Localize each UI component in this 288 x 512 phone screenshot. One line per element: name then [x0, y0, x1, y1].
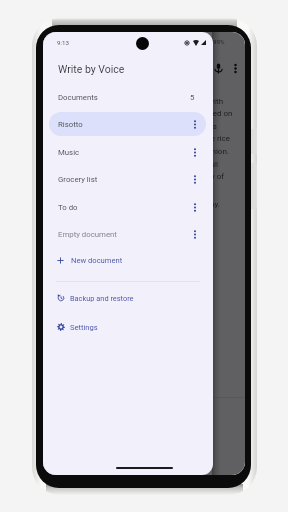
staticText: Start the day with — [161, 97, 224, 106]
button[interactable]: Grocery list — [49, 167, 206, 191]
button[interactable]: Risotto — [49, 112, 206, 136]
button[interactable]: Music — [49, 140, 206, 164]
staticText: 9:13 — [57, 39, 69, 46]
staticText: 99% — [213, 38, 225, 45]
button[interactable]: More options for To do — [188, 197, 201, 217]
staticText: Settings — [70, 323, 98, 332]
button[interactable]: To do — [49, 195, 206, 219]
button[interactable]: Voice input — [212, 62, 225, 75]
staticText: Write by Voice — [58, 63, 125, 75]
staticText: Enjoy. — [199, 200, 220, 209]
staticText: Then add a small — [157, 160, 218, 169]
button[interactable]: More options — [229, 62, 242, 75]
staticText: Risotto — [58, 120, 83, 129]
button[interactable]: More options for Grocery list — [188, 169, 201, 189]
button[interactable]: More options for Music — [188, 142, 201, 162]
button[interactable]: New document — [49, 248, 206, 272]
staticText: Grocery list — [58, 175, 98, 184]
staticText: To do — [58, 203, 78, 212]
staticText: this recipes — [176, 122, 217, 131]
staticText: Documents — [58, 93, 98, 102]
staticText: 5 — [190, 93, 195, 102]
staticText: Chop the onion. — [173, 147, 229, 156]
button[interactable]: Settings — [49, 316, 206, 338]
staticText: quantity of — [186, 172, 225, 181]
button[interactable]: More options for Empty document — [188, 224, 201, 244]
button[interactable]: More options for Risotto — [188, 114, 201, 134]
staticText: Empty document — [58, 230, 117, 239]
staticText: New document — [71, 256, 123, 265]
button[interactable]: Empty document — [49, 222, 206, 246]
button[interactable]: Backup and restore — [49, 287, 206, 309]
staticText: Music — [58, 148, 80, 157]
staticText: Prepare the rice — [174, 134, 230, 143]
staticText: Backup and restore — [70, 294, 134, 303]
staticText: something cooked based on — [132, 109, 233, 118]
